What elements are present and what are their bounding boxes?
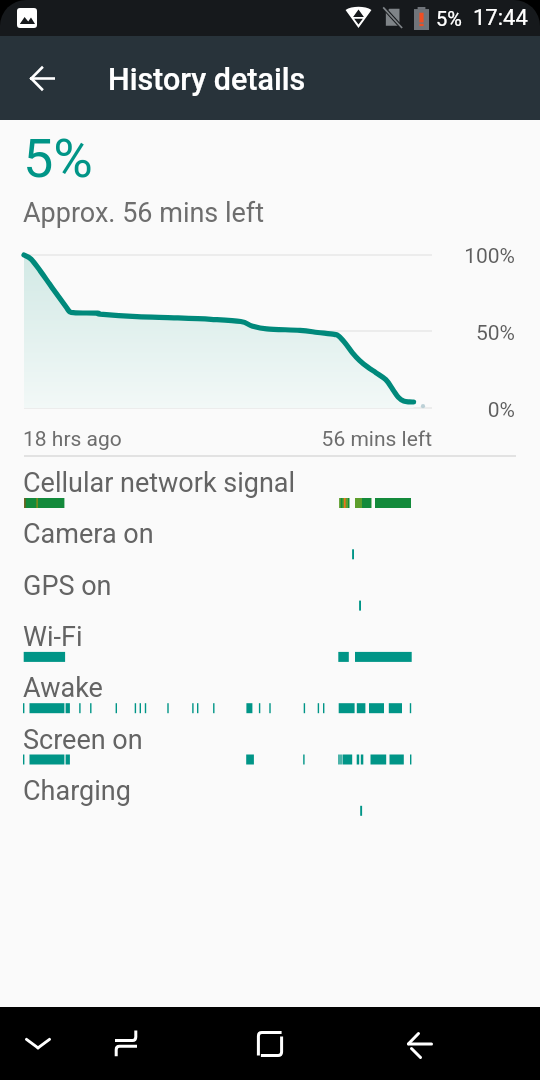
- button[interactable]: Camera on: [0, 514, 540, 565]
- button[interactable]: Wi-Fi: [0, 617, 540, 668]
- staticText: Screen on: [23, 724, 143, 756]
- staticText: 18 hrs ago: [23, 427, 122, 452]
- button[interactable]: Back: [18, 54, 66, 102]
- button[interactable]: Home: [234, 1007, 306, 1080]
- button[interactable]: Cellular network signal: [0, 463, 540, 514]
- button[interactable]: GPS on: [0, 566, 540, 617]
- staticText: GPS on: [23, 570, 112, 602]
- staticText: Cellular network signal: [23, 467, 296, 499]
- button[interactable]: Screen on: [0, 720, 540, 771]
- staticText: 17:44: [473, 5, 528, 31]
- staticText: 5%: [23, 127, 93, 190]
- button[interactable]: Awake: [0, 668, 540, 719]
- staticText: Awake: [23, 672, 103, 704]
- staticText: Charging: [23, 775, 131, 807]
- button[interactable]: Back: [384, 1007, 456, 1080]
- button[interactable]: Charging: [0, 771, 540, 822]
- staticText: Wi-Fi: [23, 621, 83, 653]
- staticText: 0%: [315, 398, 515, 423]
- staticText: History details: [108, 62, 306, 98]
- staticText: 5%: [436, 7, 462, 30]
- staticText: 100%: [315, 244, 515, 269]
- staticText: 50%: [315, 321, 515, 346]
- staticText: Approx. 56 mins left: [23, 197, 265, 229]
- staticText: 56 mins left: [232, 427, 432, 452]
- button[interactable]: Hide keyboard: [2, 1007, 74, 1080]
- staticText: Camera on: [23, 518, 154, 550]
- button[interactable]: Switch input method: [90, 1007, 162, 1080]
